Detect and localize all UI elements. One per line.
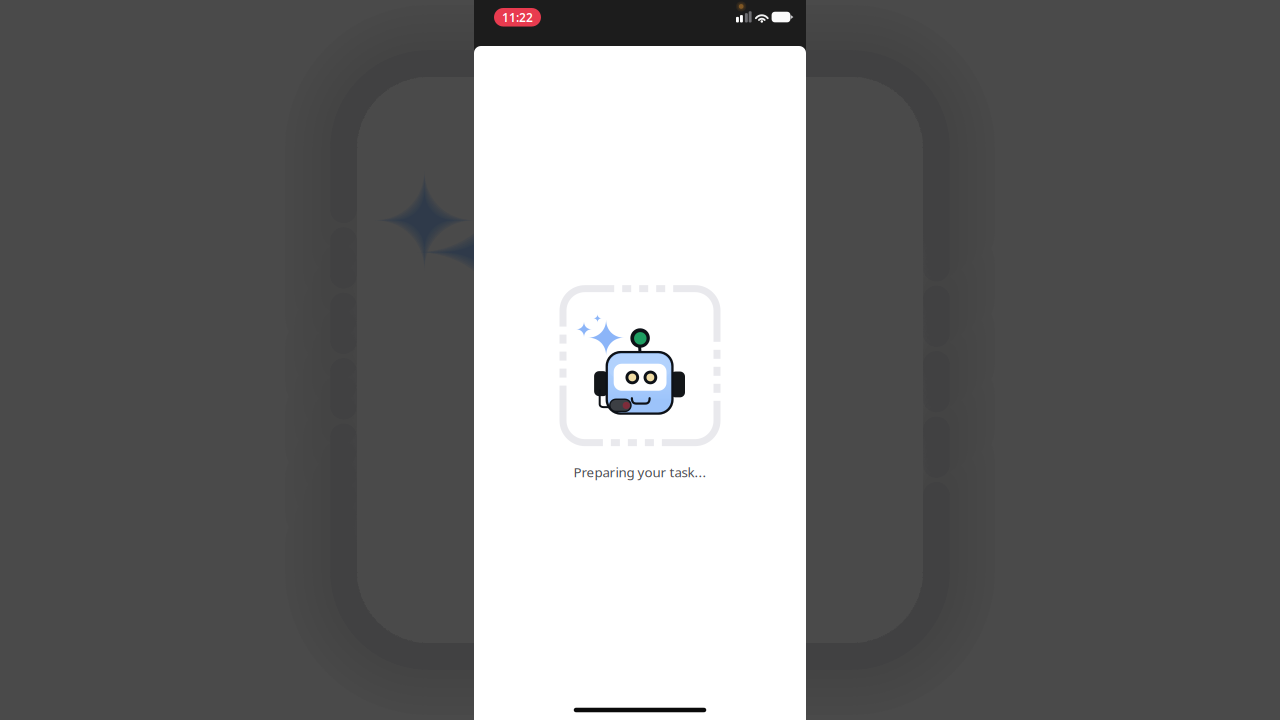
staticText: 11:22 xyxy=(502,9,533,25)
staticText: Preparing your task... xyxy=(573,463,706,481)
button[interactable]: Preparing your task xyxy=(559,285,720,481)
